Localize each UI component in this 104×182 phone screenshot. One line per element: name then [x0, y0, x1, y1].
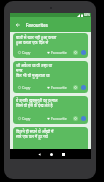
button[interactable]: Back [33, 149, 45, 159]
staticText: मगर [16, 68, 23, 73]
staticText: 84% [84, 13, 90, 17]
staticText: फिर भी वो मुस्कुराता था [16, 73, 50, 78]
staticText: जो अकेला था वो तन्हा था [16, 63, 53, 68]
button[interactable]: Share on WhatsApp [73, 50, 78, 55]
button[interactable]: Back [14, 21, 22, 29]
button[interactable]: Favourite [47, 85, 67, 90]
staticText: Copy [22, 50, 31, 55]
staticText: Favourite [51, 116, 67, 121]
button[interactable]: कितने ही सपने थे आँखों में [13, 127, 88, 157]
staticText: Copy [22, 116, 31, 121]
button[interactable]: Recent apps [57, 149, 69, 159]
staticText: ये उनकी खूबसूरती का कमाल [16, 98, 58, 103]
staticText: सारे एक पल में टूट गये [16, 134, 48, 139]
button[interactable]: Copy [18, 116, 31, 121]
button[interactable]: Home [45, 149, 57, 159]
button[interactable]: बातों से प्यार नहीं हुआ करता [13, 33, 88, 58]
button[interactable]: Share on WhatsApp [73, 116, 78, 121]
button[interactable]: Favourite [47, 116, 67, 121]
button[interactable]: Favourite [47, 149, 67, 154]
staticText: Favourite [51, 149, 67, 154]
staticText: जिसे वो हँस के देख लेते है [16, 103, 53, 108]
button[interactable]: Share on Facebook [81, 85, 86, 90]
staticText: Favourite [51, 50, 67, 55]
staticText: बातों से प्यार नहीं हुआ करता [16, 35, 57, 40]
staticText: Favourites [26, 22, 48, 28]
button[interactable]: ये उनकी खूबसूरती का कमाल [13, 96, 88, 124]
staticText: हुआ करता एक दिल से [16, 40, 49, 45]
button[interactable]: जो अकेला था वो तन्हा था [13, 61, 88, 93]
button[interactable]: Copy [18, 50, 31, 55]
staticText: Copy [22, 85, 31, 90]
staticText: Favourite [51, 85, 67, 90]
button[interactable]: Share on WhatsApp [73, 85, 78, 90]
staticText: कितने ही सपने थे आँखों में [16, 129, 54, 134]
button[interactable]: Copy [18, 85, 31, 90]
button[interactable]: Share on Facebook [81, 50, 86, 55]
button[interactable]: Favourite [47, 50, 67, 55]
button[interactable]: Share on Facebook [81, 116, 86, 121]
